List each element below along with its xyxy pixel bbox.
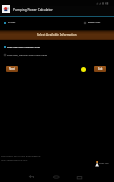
button[interactable]: Flow rate, Density and Pump head — [4, 52, 108, 60]
button[interactable]: Home — [50, 172, 64, 182]
button[interactable]: English Units — [82, 19, 112, 27]
staticText: COPYRIGHT 2015 TMEC ENGINEERING — [1, 155, 41, 158]
staticText: Flow rate and Pressure drop — [7, 45, 40, 48]
button[interactable]: Exit — [94, 66, 106, 72]
button[interactable]: SI Units — [3, 19, 33, 27]
staticText: SI Units — [8, 21, 16, 24]
staticText: Select Available Information — [37, 33, 77, 37]
staticText: TMEC Soft — [99, 162, 109, 165]
button[interactable]: Flow rate and Pressure drop — [4, 44, 108, 52]
staticText: Pumping Power Calculator — [13, 8, 53, 12]
staticText: Flow rate, Density and Pump head — [7, 53, 48, 56]
staticText: Exit — [98, 67, 103, 71]
button[interactable]: Recents — [73, 172, 87, 182]
staticText: Next — [9, 67, 15, 71]
button[interactable]: Next — [6, 66, 18, 72]
staticText: English Units — [88, 21, 101, 24]
staticText: http://www.tmecsoft.com — [1, 159, 28, 162]
button[interactable]: Back — [27, 172, 41, 182]
button[interactable]: Help — [81, 67, 86, 72]
